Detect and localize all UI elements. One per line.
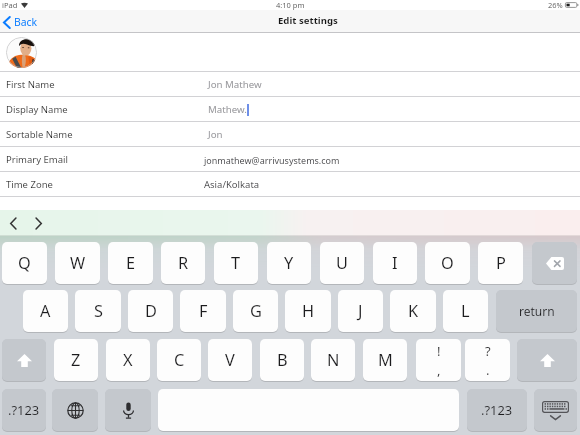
button[interactable]: D xyxy=(128,290,173,332)
button[interactable]: I xyxy=(373,242,417,284)
staticText: ! xyxy=(437,342,441,360)
button[interactable]: N xyxy=(311,339,355,381)
button[interactable]: U xyxy=(320,242,364,284)
staticText: X xyxy=(123,349,133,371)
button[interactable]: O xyxy=(425,242,470,284)
button[interactable]: Back xyxy=(3,15,38,29)
staticText: 26% xyxy=(548,0,563,10)
button[interactable]: B xyxy=(260,339,304,381)
staticText: J xyxy=(358,300,363,322)
button[interactable]: W xyxy=(55,242,100,284)
button[interactable]: Time Zone xyxy=(0,172,580,197)
staticText: S xyxy=(94,300,103,322)
staticText: H xyxy=(302,300,315,322)
staticText: jonmathew@arrivusystems.com xyxy=(204,154,340,166)
button[interactable]: Sortable Name xyxy=(0,122,580,147)
staticText: .?123 xyxy=(481,401,513,419)
staticText: First Name xyxy=(6,78,55,91)
staticText: Y xyxy=(284,252,294,274)
staticText: V xyxy=(225,349,235,371)
button[interactable]: T xyxy=(214,242,258,284)
staticText: Jon xyxy=(208,128,223,141)
button[interactable]: Profile photo xyxy=(6,37,37,68)
staticText: Time Zone xyxy=(6,178,53,191)
staticText: A xyxy=(40,300,51,322)
button[interactable]: K xyxy=(390,290,436,332)
button[interactable]: Display Name xyxy=(0,97,580,122)
staticText: P xyxy=(496,252,506,274)
staticText: Back xyxy=(14,15,38,29)
button[interactable]: S xyxy=(75,290,121,332)
button[interactable]: R xyxy=(161,242,205,284)
button[interactable]: L xyxy=(443,290,488,332)
staticText: K xyxy=(408,300,419,322)
staticText: D xyxy=(145,300,157,322)
button[interactable]: A xyxy=(23,290,68,332)
staticText: Mathew. xyxy=(208,103,247,116)
button[interactable]: .?123 xyxy=(2,389,46,431)
staticText: ? xyxy=(485,342,491,360)
button[interactable]: J xyxy=(338,290,383,332)
button[interactable]: C xyxy=(157,339,201,381)
staticText: .?123 xyxy=(8,401,40,419)
button[interactable]: return xyxy=(496,290,577,332)
staticText: Asia/Kolkata xyxy=(204,178,260,191)
staticText: Z xyxy=(71,349,81,371)
staticText: Edit settings xyxy=(278,14,338,27)
button[interactable]: Previous field xyxy=(4,213,22,233)
button[interactable]: E xyxy=(108,242,153,284)
button[interactable]: .?123 xyxy=(467,389,527,431)
button[interactable]: ! xyxy=(416,339,461,381)
staticText: F xyxy=(199,300,208,322)
button[interactable]: Y xyxy=(267,242,311,284)
button[interactable]: Shift xyxy=(517,339,577,381)
button[interactable]: Q xyxy=(2,242,47,284)
staticText: B xyxy=(277,349,288,371)
staticText: C xyxy=(174,349,185,371)
staticText: return xyxy=(519,303,555,319)
staticText: Display Name xyxy=(6,103,68,116)
button[interactable]: ? xyxy=(465,339,510,381)
button[interactable]: Shift xyxy=(2,339,46,381)
staticText: G xyxy=(250,300,262,322)
staticText: Jon Mathew xyxy=(208,78,262,91)
staticText: O xyxy=(441,252,454,274)
staticText: . xyxy=(486,361,490,379)
button[interactable]: Change keyboard xyxy=(52,389,98,431)
staticText: 4:10 pm xyxy=(276,0,305,10)
button[interactable]: Backspace xyxy=(532,242,577,284)
button[interactable]: Primary Email xyxy=(0,147,580,172)
staticText: I xyxy=(392,252,398,274)
staticText: N xyxy=(327,349,340,371)
button[interactable]: First Name xyxy=(0,72,580,97)
button[interactable]: P xyxy=(478,242,523,284)
button[interactable]: Dictation xyxy=(105,389,151,431)
staticText: Q xyxy=(18,252,31,274)
staticText: U xyxy=(336,252,348,274)
button[interactable]: V xyxy=(208,339,252,381)
staticText: T xyxy=(231,252,241,274)
staticText: M xyxy=(378,349,393,371)
button[interactable]: M xyxy=(363,339,407,381)
staticText: R xyxy=(178,252,189,274)
staticText: iPad xyxy=(2,0,18,10)
button[interactable]: Z xyxy=(54,339,98,381)
staticText: , xyxy=(437,361,441,379)
staticText: Sortable Name xyxy=(6,128,73,141)
button[interactable]: Next field xyxy=(29,213,47,233)
staticText: L xyxy=(461,300,470,322)
staticText: E xyxy=(126,252,136,274)
button[interactable]: Hide keyboard xyxy=(534,389,577,431)
button[interactable]: H xyxy=(285,290,331,332)
button[interactable]: G xyxy=(233,290,278,332)
button[interactable]: F xyxy=(180,290,226,332)
staticText: W xyxy=(70,252,86,274)
staticText: Primary Email xyxy=(6,153,68,166)
button[interactable]: X xyxy=(106,339,150,381)
